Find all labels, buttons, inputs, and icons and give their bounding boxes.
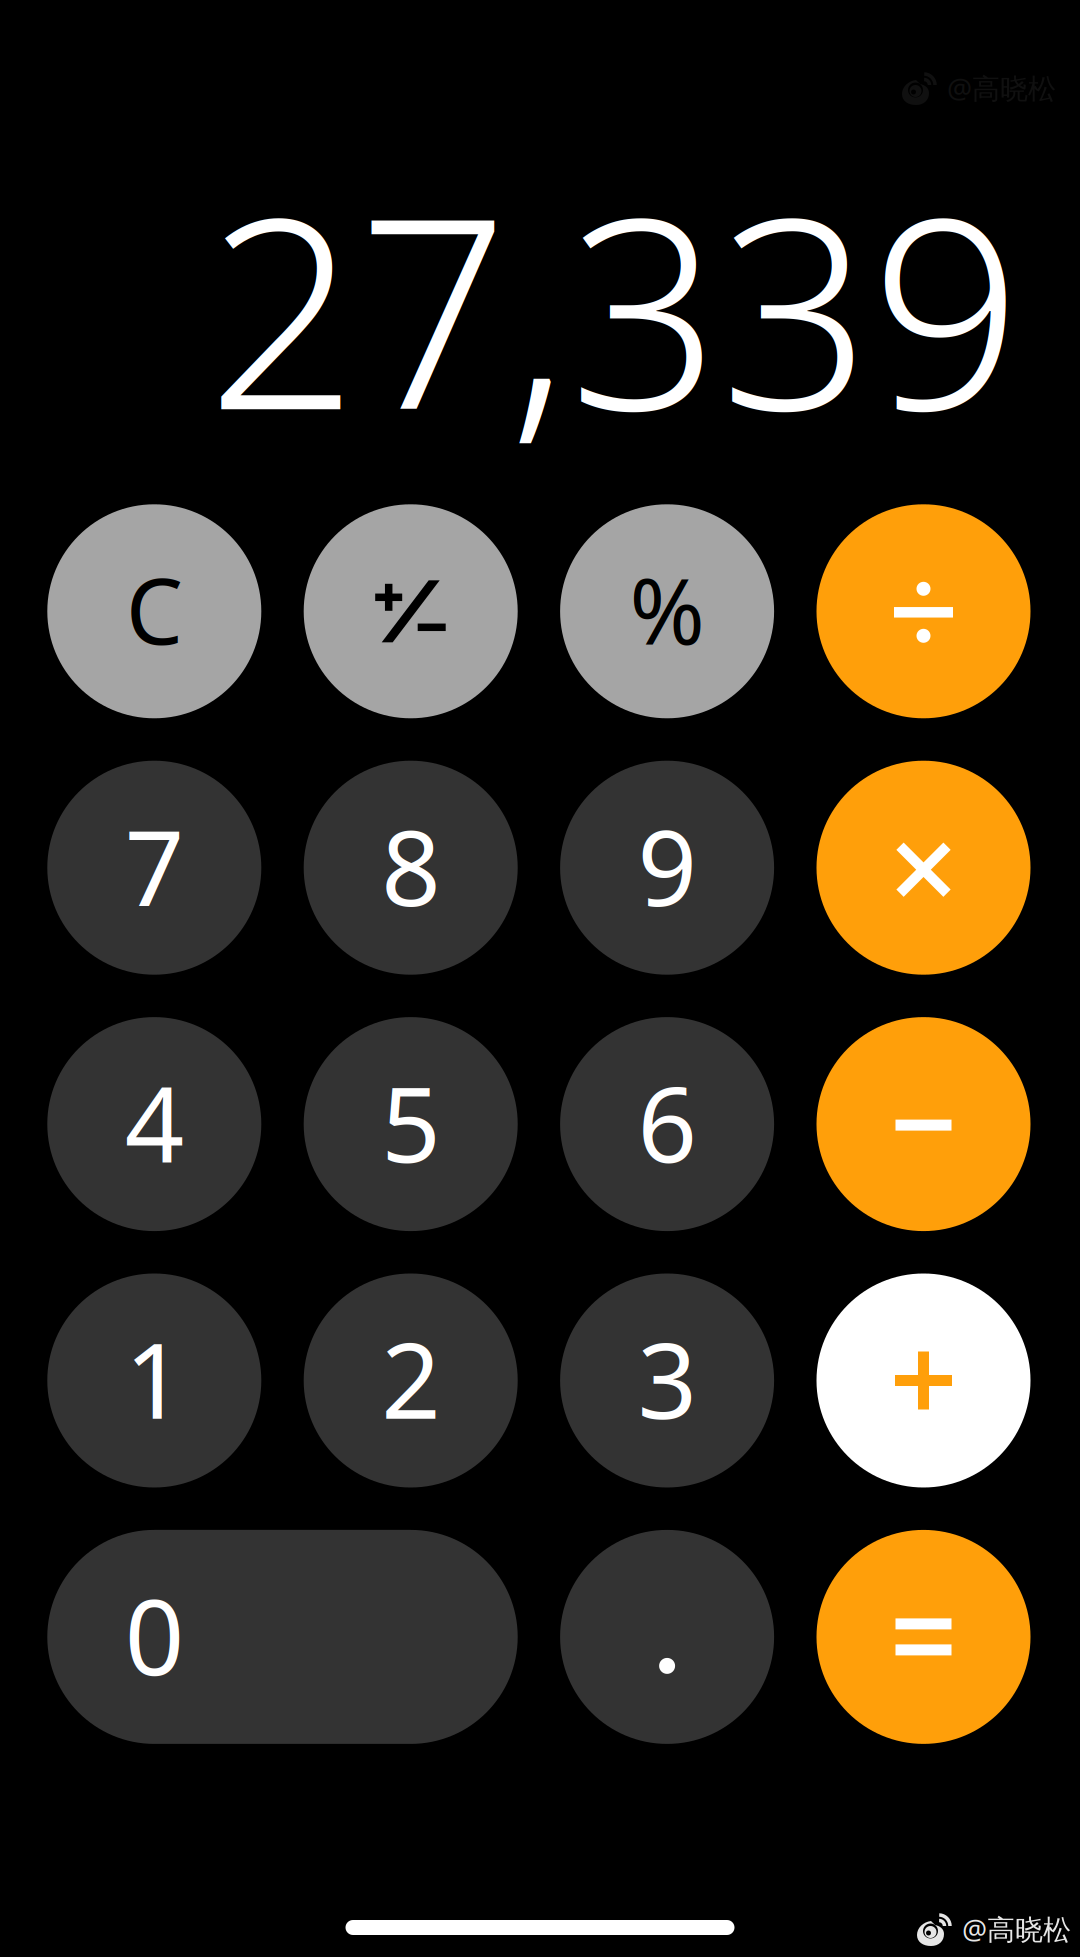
button[interactable]: 5 [304,1017,518,1231]
button[interactable]: 2 [304,1273,518,1487]
staticText: 3 [638,1309,697,1447]
staticText: 5 [381,1053,440,1191]
staticText: @高晓松 [947,69,1056,107]
staticText: % [630,549,705,669]
button[interactable]: Multiply [816,761,1030,975]
button[interactable]: Plus minus [304,504,518,718]
staticText: 9 [638,797,697,935]
button[interactable]: Decimal point [560,1530,774,1744]
button[interactable]: 1 [47,1273,261,1487]
button[interactable]: 4 [47,1017,261,1231]
staticText: 1 [125,1309,184,1447]
button[interactable]: 7 [47,761,261,975]
staticText: 8 [381,797,440,935]
button[interactable]: % [560,504,774,718]
staticText: 2 [381,1309,440,1447]
button[interactable]: Add [816,1273,1030,1487]
staticText: 6 [638,1053,697,1191]
button[interactable]: 8 [304,761,518,975]
staticText: @高晓松 [962,1910,1071,1948]
staticText: 4 [125,1053,184,1191]
staticText: C [126,549,183,669]
button[interactable]: C [47,504,261,718]
staticText: 7 [125,797,184,935]
staticText: 0 [125,1566,184,1704]
button[interactable]: Subtract [816,1017,1030,1231]
button[interactable]: 0 [47,1530,518,1744]
staticText: 27,339 [207,131,1022,482]
button[interactable]: 3 [560,1273,774,1487]
button[interactable]: Divide [816,504,1030,718]
button[interactable]: Equals [816,1530,1030,1744]
button[interactable]: 6 [560,1017,774,1231]
button[interactable]: 9 [560,761,774,975]
